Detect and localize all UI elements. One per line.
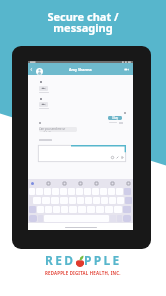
button[interactable]: Assistant	[31, 182, 34, 185]
staticText: RED	[45, 252, 76, 268]
button[interactable]: Keyboard tool	[79, 182, 82, 185]
staticText: REDAPPLE DIGITAL HEALTH, INC.	[45, 270, 121, 276]
staticText: Secure chat / messaging	[47, 9, 119, 36]
staticText: PPLE	[84, 252, 122, 268]
staticText: Can you send me ur availability	[39, 127, 77, 132]
button[interactable]: Symbols	[29, 215, 37, 222]
button[interactable]: Send	[121, 156, 124, 159]
button[interactable]: Attach	[116, 156, 119, 159]
button[interactable]: Keyboard tool	[47, 182, 50, 185]
staticText: Okay	[112, 116, 119, 120]
button[interactable]: Keyboard tool	[63, 182, 66, 185]
button[interactable]: Keyboard tool	[95, 182, 98, 185]
button[interactable]: Emoji	[111, 156, 114, 159]
button[interactable]: Keyboard tool	[127, 182, 130, 185]
button[interactable]: Keyboard tool	[111, 182, 114, 185]
staticText: Amy Sharma	[69, 67, 92, 72]
button[interactable]: Back	[29, 67, 34, 72]
button[interactable]: Enter	[123, 215, 131, 222]
button[interactable]: Video call	[124, 67, 129, 72]
